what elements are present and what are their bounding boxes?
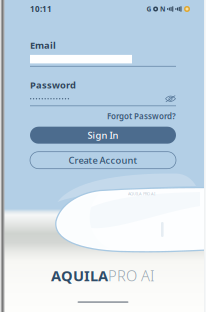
staticText: AQUILA <box>51 266 108 285</box>
staticText: 10:11 <box>30 4 52 14</box>
staticText: Sign In <box>87 129 118 141</box>
staticText: G <box>147 5 152 13</box>
staticText: Create Account <box>68 154 137 166</box>
staticText: PRO AI <box>108 266 155 285</box>
staticText: Password <box>30 79 76 91</box>
staticText: N <box>160 5 165 13</box>
staticText: Forgot Password? <box>107 111 176 121</box>
button[interactable]: Create Account <box>30 152 176 169</box>
staticText: Email <box>30 39 56 51</box>
staticText: AQUILA PRO AI <box>128 191 155 196</box>
button[interactable]: Forgot Password? <box>30 110 176 122</box>
button[interactable]: Sign In <box>30 127 176 144</box>
